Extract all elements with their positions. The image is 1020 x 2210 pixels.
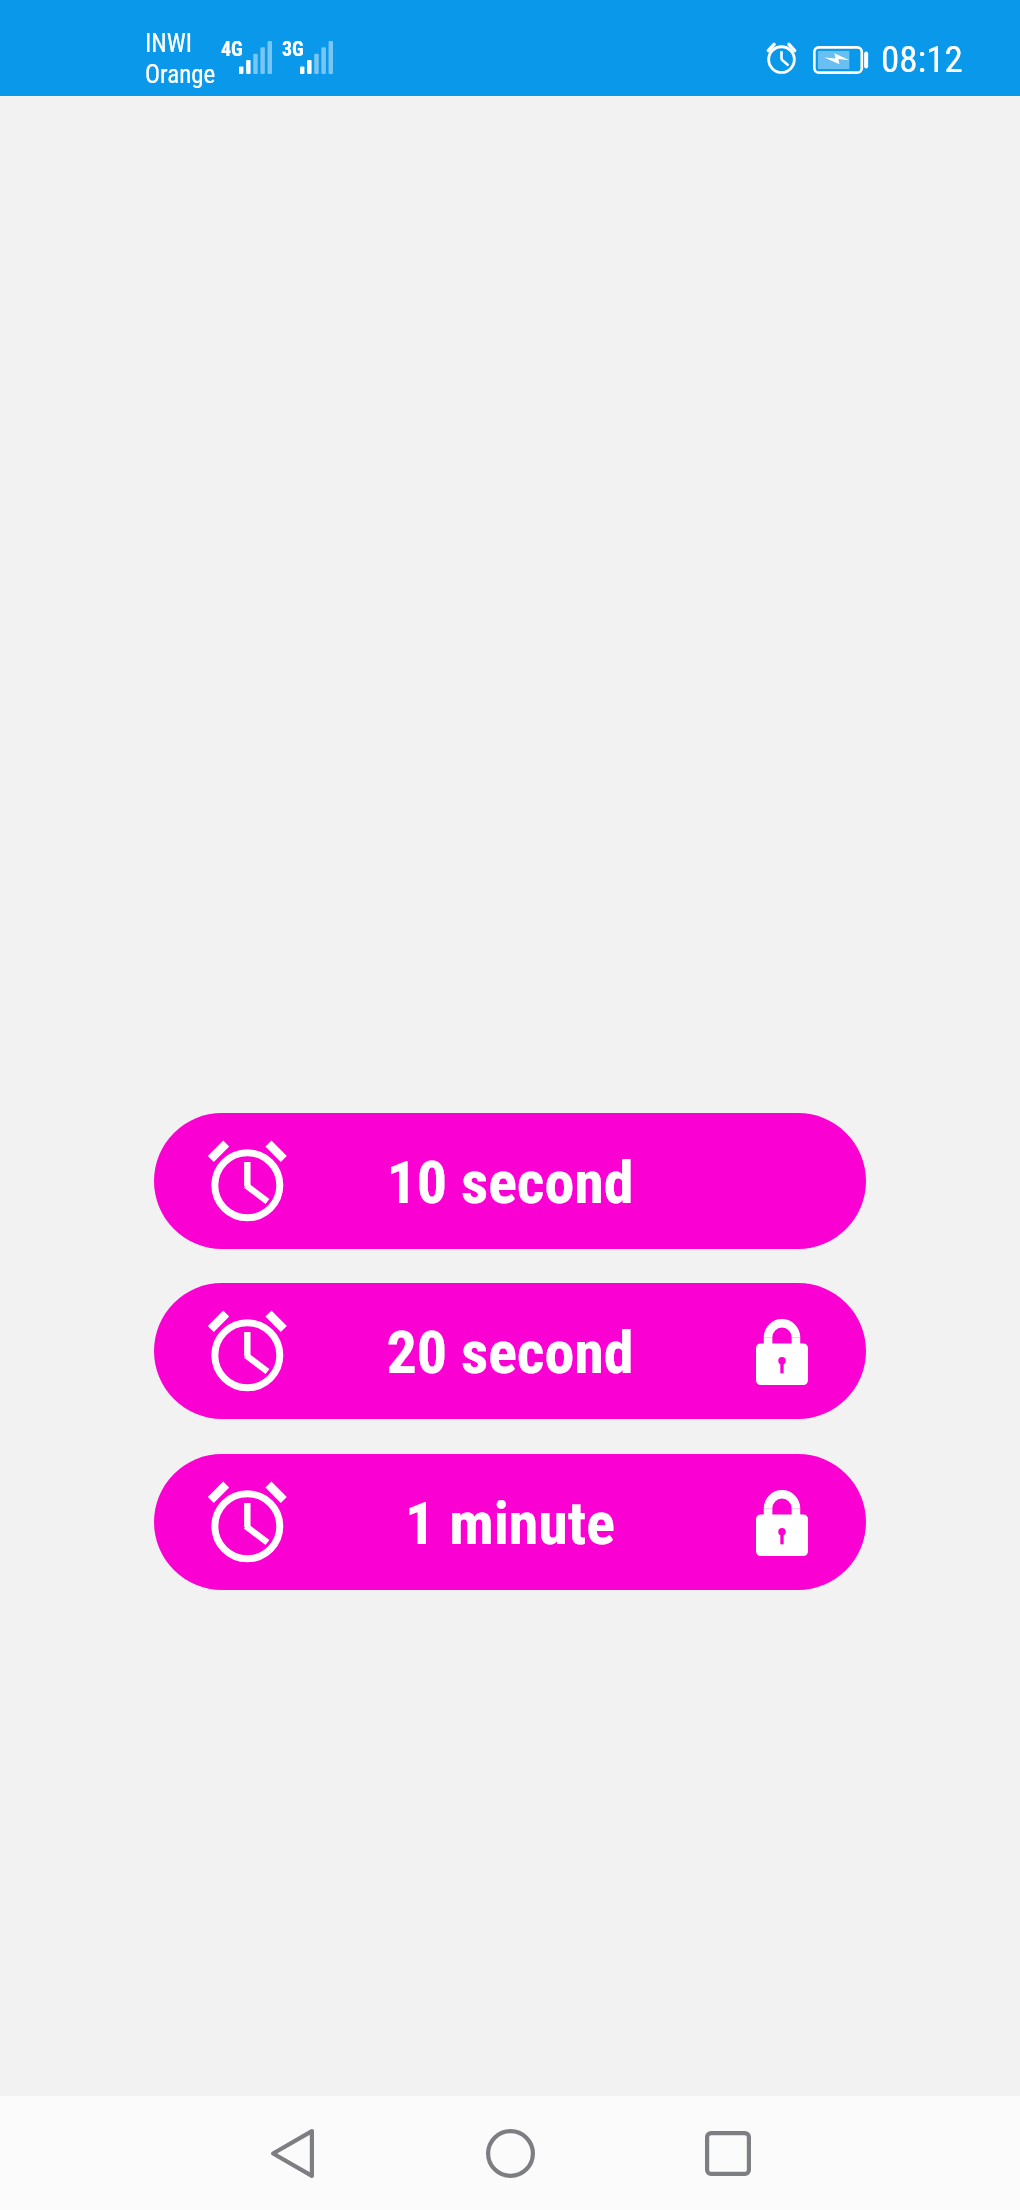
staticText: Orange: [145, 60, 216, 89]
staticText: 1 minute: [405, 1488, 615, 1558]
staticText: 10 second: [386, 1147, 634, 1217]
staticText: 20 second: [386, 1317, 634, 1387]
staticText: 08:12: [881, 38, 963, 81]
button[interactable]: Back: [232, 2096, 352, 2210]
button[interactable]: Home: [450, 2096, 570, 2210]
staticText: INWI: [145, 29, 193, 58]
button[interactable]: 1 minute: [154, 1454, 866, 1590]
staticText: 3G: [282, 37, 304, 60]
button[interactable]: 10 second: [154, 1113, 866, 1249]
button[interactable]: Recent apps: [668, 2096, 788, 2210]
button[interactable]: 20 second: [154, 1283, 866, 1419]
staticText: 4G: [221, 37, 243, 60]
